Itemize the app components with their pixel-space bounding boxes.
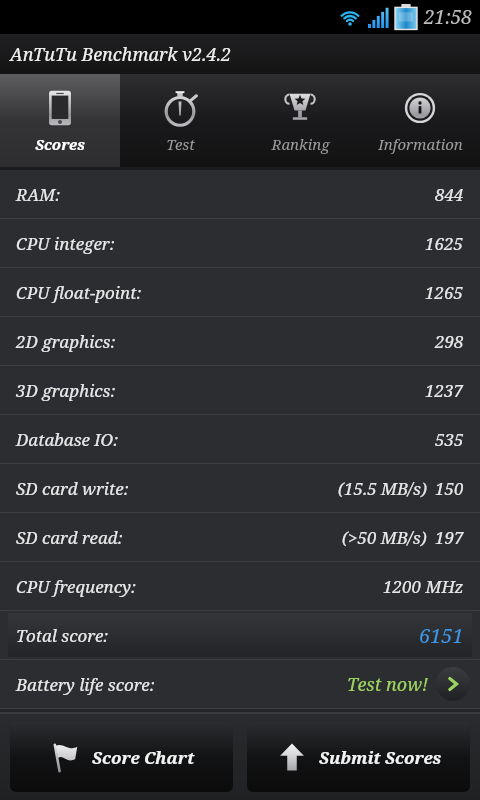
button[interactable]: Start battery life test (436, 667, 470, 701)
button[interactable]: Battery life score: (0, 660, 480, 708)
staticText: AnTuTu Benchmark v2.4.2 (10, 42, 232, 67)
staticText: CPU float-point: (16, 281, 142, 304)
button[interactable]: Scores (0, 74, 120, 167)
staticText: Test now! (347, 672, 428, 697)
button[interactable]: SD card read: (0, 513, 480, 561)
staticText: 2D graphics: (16, 330, 116, 353)
button[interactable]: RAM: (0, 170, 480, 218)
staticText: 6151 (419, 622, 464, 649)
staticText: Test (166, 134, 195, 154)
button[interactable]: SD card write: (0, 464, 480, 512)
staticText: (>50 MB/s) (342, 526, 427, 549)
button[interactable]: Ranking (240, 74, 360, 167)
staticText: 1237 (425, 379, 464, 402)
staticText: CPU integer: (16, 232, 115, 255)
staticText: 197 (435, 526, 464, 549)
staticText: (15.5 MB/s) (338, 477, 427, 500)
staticText: RAM: (16, 183, 61, 206)
staticText: SD card read: (16, 526, 123, 549)
button[interactable]: Test (120, 74, 240, 167)
staticText: Total score: (16, 624, 109, 647)
staticText: 1625 (425, 232, 464, 255)
button[interactable]: CPU float-point: (0, 268, 480, 316)
button[interactable]: CPU integer: (0, 219, 480, 267)
button[interactable]: Score Chart (10, 722, 233, 792)
staticText: Battery life score: (16, 673, 155, 696)
staticText: 844 (435, 183, 464, 206)
staticText: Submit Scores (319, 746, 442, 769)
button[interactable]: Total score: (8, 613, 472, 657)
button[interactable]: Submit Scores (247, 722, 470, 792)
staticText: Scores (35, 134, 85, 154)
staticText: 535 (435, 428, 464, 451)
button[interactable]: Database IO: (0, 415, 480, 463)
staticText: Score Chart (92, 746, 195, 769)
button[interactable]: CPU frequency: (0, 562, 480, 610)
staticText: 1265 (425, 281, 464, 304)
staticText: Information (378, 134, 463, 154)
staticText: 298 (435, 330, 464, 353)
staticText: 150 (435, 477, 464, 500)
button[interactable]: 3D graphics: (0, 366, 480, 414)
staticText: 3D graphics: (16, 379, 116, 402)
staticText: CPU frequency: (16, 575, 136, 598)
staticText: 21:58 (424, 4, 472, 30)
staticText: Database IO: (16, 428, 119, 451)
button[interactable]: Information (360, 74, 480, 167)
button[interactable]: 2D graphics: (0, 317, 480, 365)
staticText: 1200 MHz (383, 575, 464, 598)
staticText: Ranking (271, 134, 330, 154)
staticText: SD card write: (16, 477, 129, 500)
